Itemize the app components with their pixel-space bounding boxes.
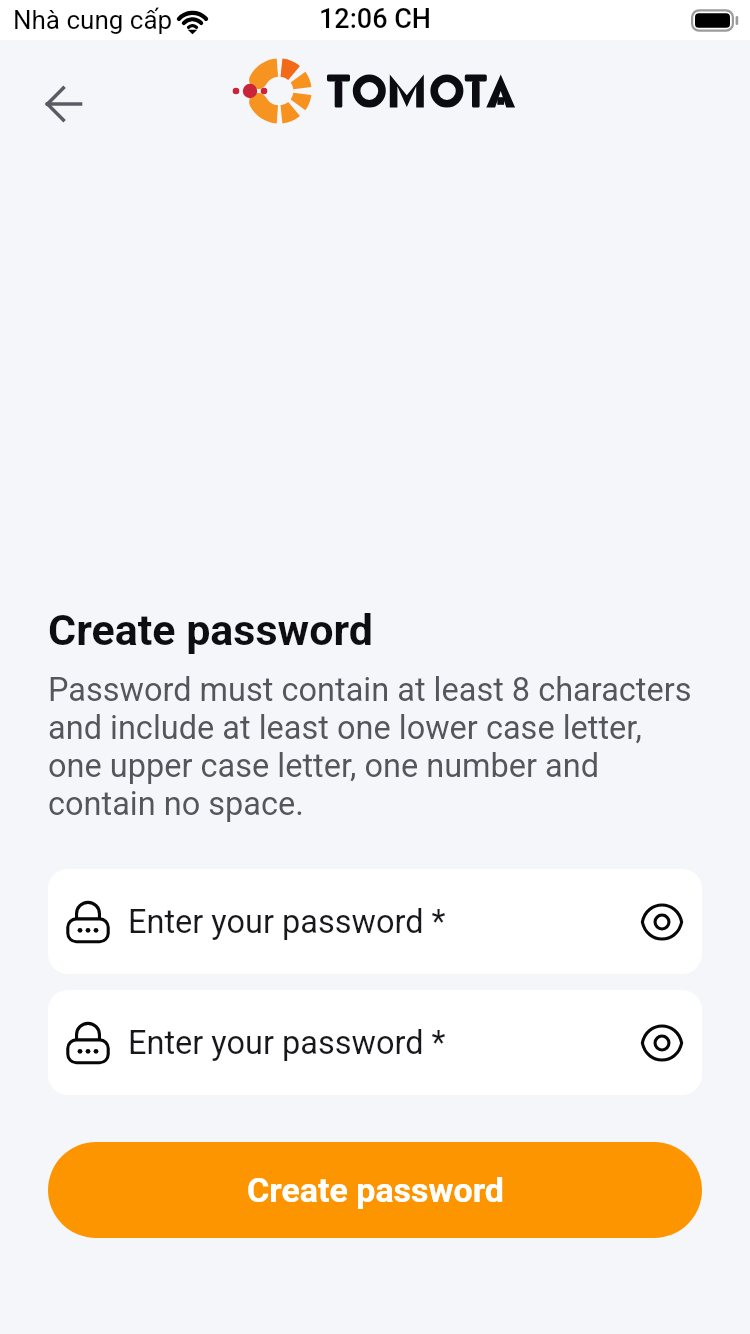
button[interactable]: Show password bbox=[640, 1021, 684, 1065]
staticText: 12:06 CH bbox=[319, 3, 431, 35]
button[interactable]: Back bbox=[33, 73, 95, 135]
button[interactable]: Show password bbox=[640, 900, 684, 944]
staticText: Enter your password * bbox=[128, 903, 446, 941]
button[interactable]: Create password bbox=[48, 1142, 702, 1238]
staticText: Create password bbox=[247, 1170, 504, 1210]
button[interactable]: Enter your password * bbox=[48, 869, 702, 974]
staticText: Nhà cung cấp bbox=[13, 5, 173, 35]
staticText: Create password bbox=[48, 605, 373, 655]
staticText: Enter your password * bbox=[128, 1024, 446, 1062]
staticText: Password must contain at least 8 charact… bbox=[48, 671, 702, 823]
button[interactable]: Enter your password * bbox=[48, 990, 702, 1095]
